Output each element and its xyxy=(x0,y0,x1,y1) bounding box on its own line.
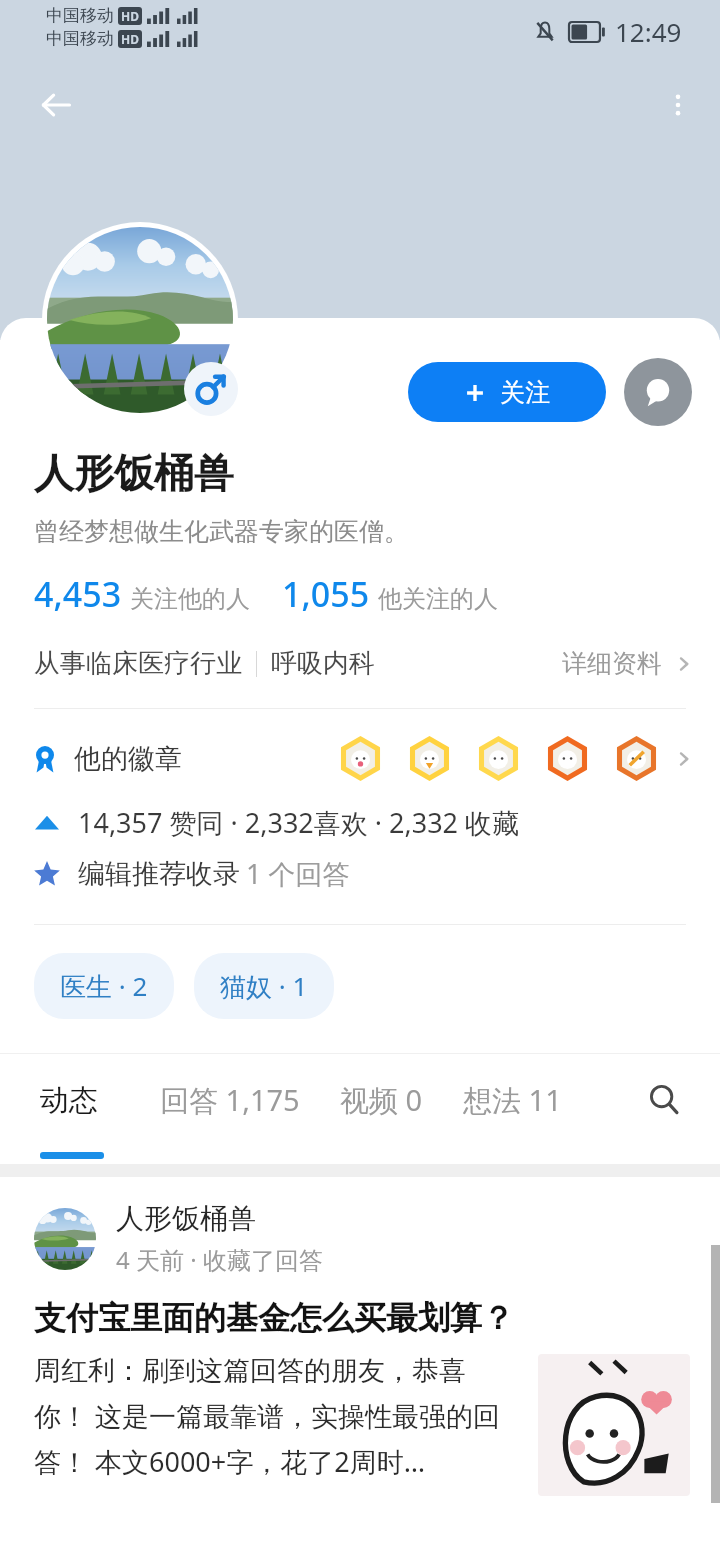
button[interactable]: 猫奴 · 1 xyxy=(194,953,334,1019)
staticText: 呼吸内科 xyxy=(271,647,375,680)
staticText: 1,055 xyxy=(282,571,370,617)
staticText: 回答 1,175 xyxy=(160,1080,300,1120)
staticText: 从事临床医疗行业 xyxy=(34,647,242,680)
button[interactable]: 4,453 xyxy=(34,571,250,617)
staticText: 支付宝里面的基金怎么买最划算？ xyxy=(34,1298,514,1338)
button[interactable]: 想法 11 xyxy=(463,1054,562,1146)
staticText: 人形饭桶兽 xyxy=(116,1201,256,1236)
staticText: 关注他的人 xyxy=(130,584,250,614)
button[interactable]: 编辑推荐收录 xyxy=(0,855,720,892)
button[interactable]: Profile picture xyxy=(42,222,238,418)
staticText: 12:49 xyxy=(615,14,682,49)
staticText: HD xyxy=(121,8,139,24)
button[interactable]: 14,357 赞同 · 2,332喜欢 · 2,332 收藏 xyxy=(0,804,720,841)
staticText: 周红利：刷到这篇回答的朋友，恭喜你！ 这是一篇最靠谱，实操性最强的回答！ 本文6… xyxy=(34,1354,516,1480)
staticText: 中国移动 xyxy=(46,28,114,49)
staticText: 他关注的人 xyxy=(378,584,498,614)
button[interactable]: 动态 xyxy=(40,1056,98,1145)
button[interactable]: Send message xyxy=(624,358,692,426)
staticText: 关注 xyxy=(500,377,550,408)
staticText: 医生 · 2 xyxy=(60,968,148,1004)
staticText: HD xyxy=(121,31,139,47)
button[interactable]: 医生 · 2 xyxy=(34,953,174,1019)
staticText: 4 天前 · 收藏了回答 xyxy=(116,1243,323,1276)
staticText: 1 个回答 xyxy=(246,855,350,892)
button[interactable]: 人形饭桶兽 xyxy=(0,1177,720,1522)
staticText: 他的徽章 xyxy=(74,742,182,776)
button[interactable]: 视频 0 xyxy=(340,1054,423,1146)
button[interactable]: More options xyxy=(650,77,706,133)
staticText: 视频 0 xyxy=(340,1080,423,1120)
staticText: 人形饭桶兽 xyxy=(34,448,234,498)
staticText: 编辑推荐收录 xyxy=(78,857,240,891)
staticText: 14,357 赞同 · 2,332喜欢 · 2,332 收藏 xyxy=(78,804,520,841)
button[interactable]: 1,055 xyxy=(282,571,498,617)
staticText: 详细资料 xyxy=(562,648,662,679)
button[interactable]: 他的徽章 xyxy=(0,735,720,782)
button[interactable]: Search xyxy=(634,1070,694,1130)
staticText: 4,453 xyxy=(34,571,122,617)
button[interactable]: Back xyxy=(24,75,88,135)
button[interactable]: 回答 1,175 xyxy=(160,1054,300,1146)
staticText: 动态 xyxy=(40,1082,98,1119)
button[interactable]: 从事临床医疗行业 xyxy=(0,647,720,680)
staticText: 猫奴 · 1 xyxy=(220,968,308,1004)
staticText: 中国移动 xyxy=(46,5,114,26)
button[interactable]: 关注 xyxy=(408,362,606,422)
staticText: 想法 11 xyxy=(463,1080,562,1120)
staticText: 曾经梦想做生化武器专家的医僧。 xyxy=(34,516,409,547)
